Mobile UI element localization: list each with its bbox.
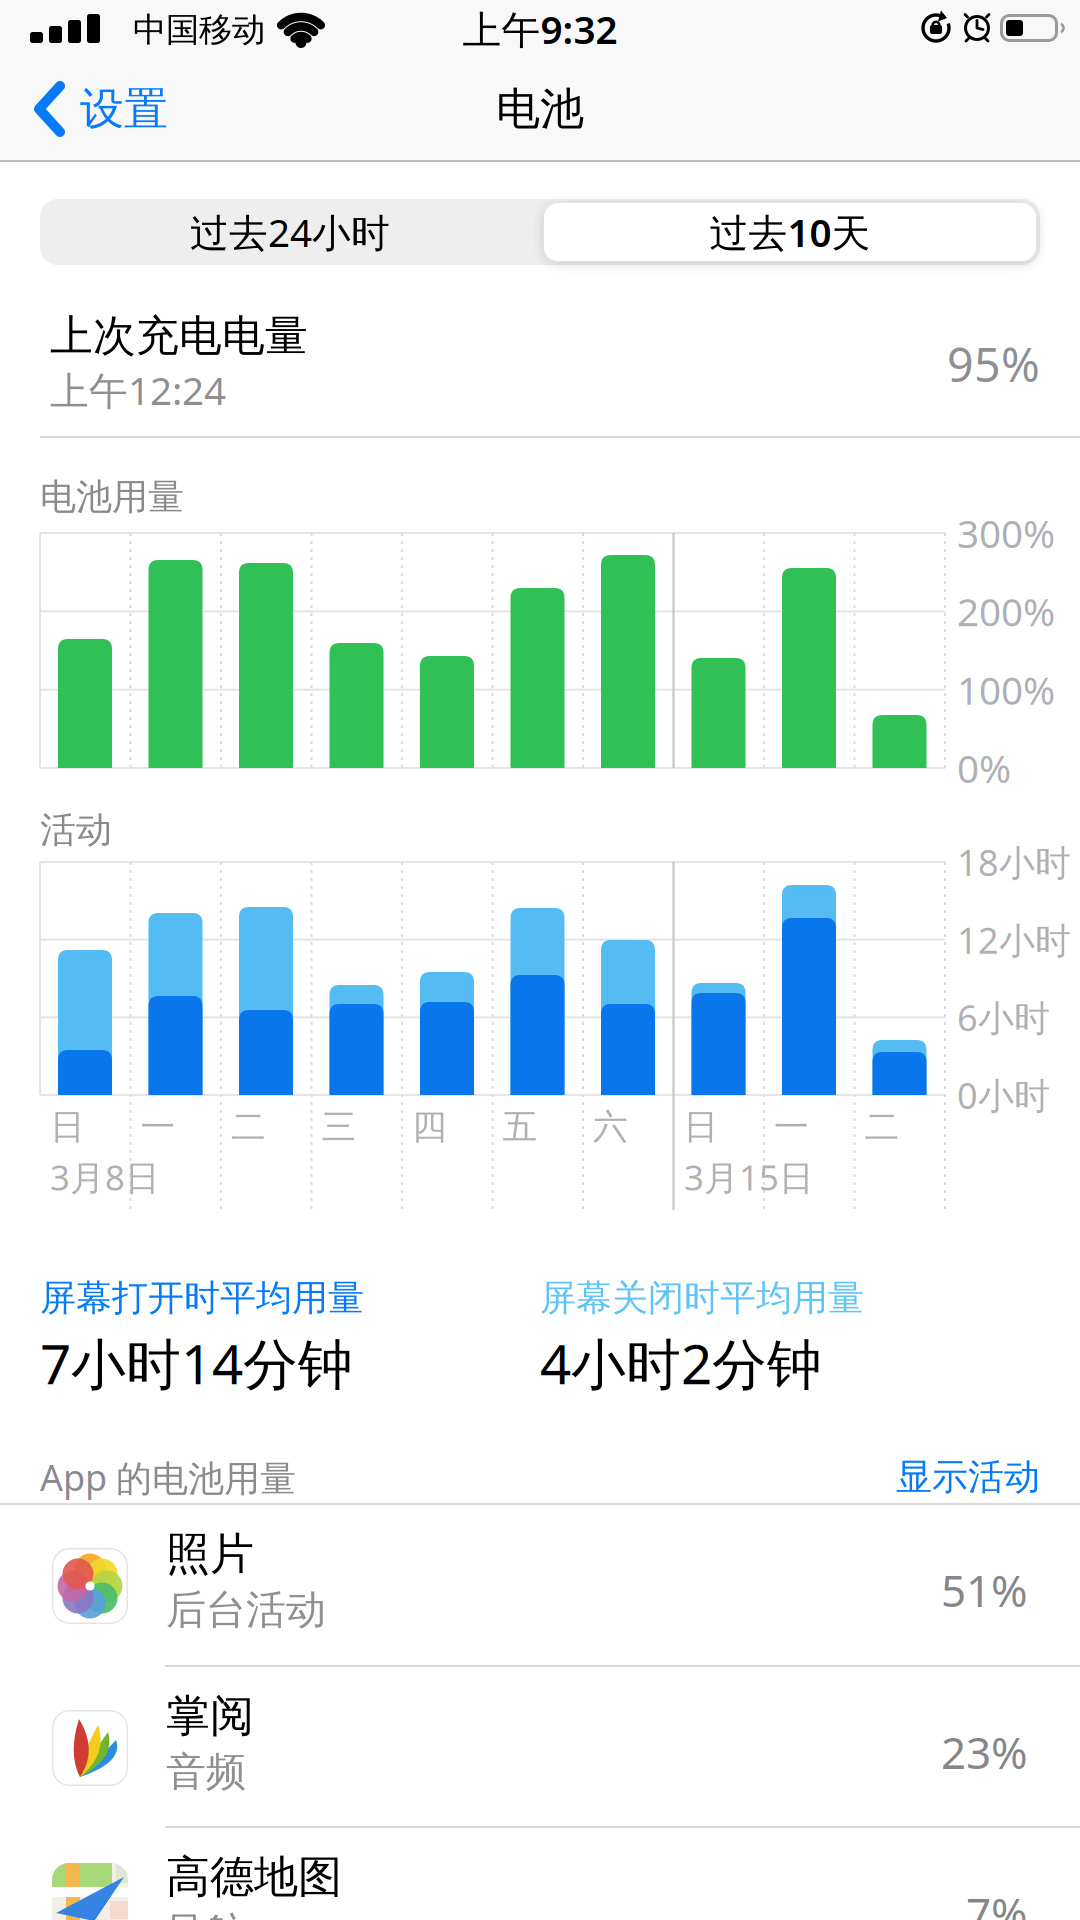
staticText: 23%: [941, 1723, 1028, 1781]
staticText: 4小时2分钟: [540, 1327, 822, 1399]
staticText: 上午9:32: [462, 3, 617, 55]
staticText: 四: [412, 1106, 447, 1148]
button[interactable]: 过去10天: [543, 202, 1037, 262]
button[interactable]: 掌阅: [0, 1666, 1080, 1828]
staticText: 三: [321, 1106, 356, 1148]
staticText: 100%: [957, 664, 1055, 715]
staticText: 过去24小时: [190, 206, 390, 258]
staticText: 显示活动: [896, 1455, 1040, 1499]
staticText: 200%: [957, 586, 1055, 637]
button[interactable]: 显示活动: [840, 1455, 1040, 1499]
staticText: App 的电池用量: [40, 1453, 296, 1501]
staticText: 设置: [80, 82, 168, 136]
staticText: 过去10天: [709, 206, 870, 258]
staticText: 0小时: [957, 1071, 1050, 1119]
staticText: 0%: [957, 742, 1011, 794]
staticText: 后台活动: [166, 1585, 326, 1634]
staticText: 屏幕关闭时平均用量: [540, 1276, 864, 1320]
staticText: 12小时: [957, 916, 1071, 964]
staticText: 95%: [947, 333, 1040, 395]
staticText: 中国移动: [133, 9, 265, 50]
button[interactable]: 照片: [0, 1504, 1080, 1666]
staticText: 导航: [166, 1908, 246, 1920]
staticText: 电池: [496, 82, 584, 136]
staticText: 六: [593, 1106, 628, 1148]
staticText: 上次充电电量: [50, 310, 308, 362]
staticText: 上午12:24: [50, 364, 226, 416]
staticText: 一: [774, 1106, 809, 1148]
staticText: 7%: [966, 1884, 1028, 1920]
staticText: 电池用量: [40, 475, 184, 519]
staticText: 掌阅: [166, 1689, 254, 1743]
staticText: 日: [50, 1106, 85, 1148]
staticText: 一: [140, 1106, 175, 1148]
staticText: 高德地图: [166, 1850, 342, 1904]
staticText: 日: [683, 1106, 718, 1148]
staticText: 300%: [957, 507, 1055, 559]
button[interactable]: 过去24小时: [40, 199, 540, 265]
staticText: 51%: [941, 1561, 1028, 1619]
staticText: 二: [864, 1106, 899, 1148]
staticText: 照片: [166, 1527, 254, 1581]
staticText: 6小时: [957, 993, 1050, 1041]
staticText: 五: [502, 1106, 537, 1148]
staticText: 3月15日: [684, 1154, 814, 1200]
staticText: 7小时14分钟: [40, 1327, 353, 1399]
button[interactable]: 返回设置: [0, 65, 220, 145]
staticText: 音频: [166, 1747, 246, 1796]
staticText: 屏幕打开时平均用量: [40, 1276, 364, 1320]
staticText: 活动: [40, 808, 112, 852]
staticText: 二: [231, 1106, 266, 1148]
button[interactable]: 高德地图: [0, 1827, 1080, 1920]
staticText: 3月8日: [50, 1154, 160, 1200]
staticText: 18小时: [957, 838, 1071, 886]
